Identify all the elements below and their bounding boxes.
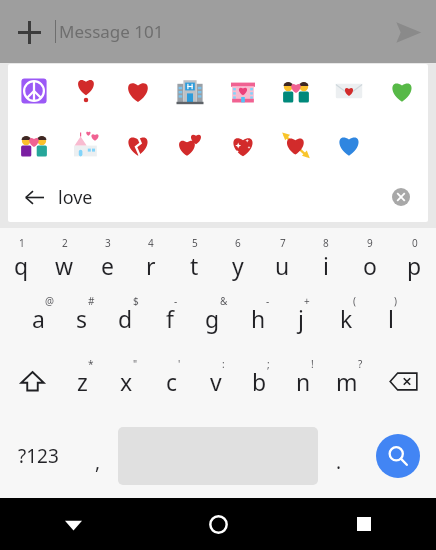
- button[interactable]: Emoji 13: [216, 118, 269, 172]
- staticText: e: [101, 250, 114, 281]
- button[interactable]: Emoji 9: [8, 118, 60, 172]
- staticText: 3: [105, 236, 111, 250]
- button[interactable]: 0: [392, 228, 436, 288]
- staticText: (: [353, 294, 356, 308]
- staticText: u: [275, 250, 290, 281]
- button[interactable]: Back: [15, 178, 53, 216]
- staticText: *: [88, 357, 94, 371]
- staticText: ': [178, 357, 181, 371]
- button[interactable]: Emoji 6: [269, 64, 322, 118]
- staticText: s: [76, 303, 88, 334]
- button[interactable]: Emoji 8: [375, 64, 428, 118]
- button[interactable]: Emoji 7: [322, 64, 375, 118]
- button[interactable]: z: [64, 348, 107, 414]
- staticText: love: [58, 185, 93, 210]
- button[interactable]: Emoji 1: [8, 64, 60, 118]
- button[interactable]: Emoji 2: [60, 64, 112, 118]
- staticText: x: [120, 366, 133, 397]
- staticText: y: [232, 250, 244, 281]
- button[interactable]: Emoji 15: [322, 118, 375, 172]
- staticText: t: [190, 250, 199, 281]
- staticText: f: [166, 303, 174, 334]
- staticText: 0: [412, 236, 418, 250]
- staticText: d: [118, 303, 133, 334]
- staticText: -: [266, 294, 270, 308]
- button[interactable]: Emoji 4: [164, 64, 216, 118]
- staticText: ?123: [18, 443, 59, 469]
- button[interactable]: s: [64, 288, 107, 348]
- button[interactable]: Emoji 14: [269, 118, 322, 172]
- button[interactable]: d: [107, 288, 150, 348]
- staticText: l: [388, 303, 394, 334]
- button[interactable]: a: [21, 288, 64, 348]
- button[interactable]: v: [195, 348, 239, 414]
- staticText: w: [55, 250, 74, 281]
- staticText: z: [77, 366, 88, 397]
- button[interactable]: Add attachment: [8, 11, 50, 53]
- button[interactable]: f: [150, 288, 194, 348]
- button[interactable]: 1: [0, 228, 43, 288]
- button[interactable]: g: [194, 288, 238, 348]
- staticText: c: [166, 366, 178, 397]
- button[interactable]: ?123: [0, 414, 77, 498]
- staticText: b: [252, 366, 267, 397]
- staticText: h: [251, 303, 266, 334]
- staticText: k: [340, 303, 353, 334]
- button[interactable]: Clear search: [384, 180, 418, 214]
- staticText: 8: [323, 236, 329, 250]
- button[interactable]: ,: [77, 414, 118, 498]
- button[interactable]: c: [151, 348, 195, 414]
- button[interactable]: m: [327, 348, 371, 414]
- staticText: g: [205, 303, 220, 334]
- button[interactable]: 2: [43, 228, 86, 288]
- staticText: 4: [148, 236, 154, 250]
- button[interactable]: Back: [0, 498, 146, 550]
- button[interactable]: b: [239, 348, 283, 414]
- staticText: v: [210, 366, 222, 397]
- staticText: $: [133, 294, 139, 308]
- staticText: -: [174, 294, 178, 308]
- staticText: o: [363, 250, 377, 281]
- button[interactable]: h: [238, 288, 282, 348]
- staticText: 1: [19, 236, 25, 250]
- button[interactable]: 8: [304, 228, 348, 288]
- staticText: 9: [367, 236, 373, 250]
- staticText: i: [323, 250, 329, 281]
- button[interactable]: 7: [260, 228, 304, 288]
- button[interactable]: .: [318, 414, 359, 498]
- button[interactable]: Emoji 11: [112, 118, 164, 172]
- button[interactable]: x: [107, 348, 151, 414]
- staticText: 2: [62, 236, 68, 250]
- button[interactable]: l: [370, 288, 414, 348]
- button[interactable]: 3: [86, 228, 129, 288]
- button[interactable]: Send: [386, 10, 430, 54]
- button[interactable]: n: [283, 348, 327, 414]
- button[interactable]: Emoji 5: [216, 64, 269, 118]
- staticText: Message 101: [59, 20, 164, 43]
- staticText: ,: [95, 449, 101, 475]
- staticText: .: [336, 449, 342, 475]
- button[interactable]: Emoji 10: [60, 118, 112, 172]
- staticText: 5: [192, 236, 198, 250]
- staticText: m: [336, 366, 358, 397]
- button[interactable]: 4: [129, 228, 172, 288]
- button[interactable]: Search: [376, 434, 420, 478]
- button[interactable]: j: [282, 288, 326, 348]
- button[interactable]: 5: [172, 228, 216, 288]
- staticText: j: [298, 303, 304, 334]
- button[interactable]: 6: [216, 228, 260, 288]
- button[interactable]: Shift: [0, 348, 64, 414]
- button[interactable]: Emoji 3: [112, 64, 164, 118]
- button[interactable]: 9: [348, 228, 392, 288]
- button[interactable]: Recent apps: [291, 498, 436, 550]
- staticText: @: [45, 294, 54, 308]
- button[interactable]: k: [326, 288, 370, 348]
- button[interactable]: Emoji 12: [164, 118, 216, 172]
- button[interactable]: Backspace: [371, 348, 436, 414]
- staticText: !: [311, 357, 314, 371]
- button[interactable]: Home: [146, 498, 291, 550]
- staticText: +: [304, 294, 310, 308]
- staticText: :: [222, 357, 225, 371]
- staticText: a: [32, 303, 45, 334]
